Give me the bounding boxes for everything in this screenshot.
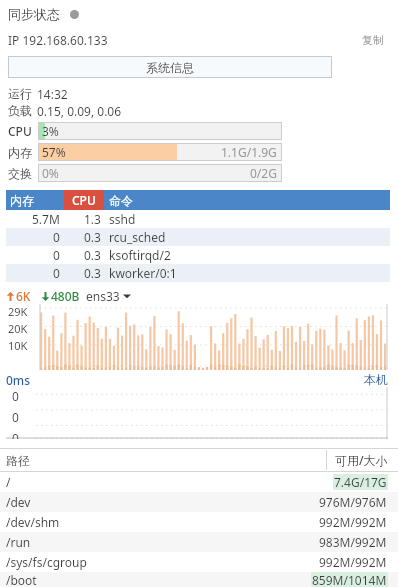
staticText: 0.15, 0.09, 0.06 [37, 103, 122, 119]
button[interactable]: 0 [6, 246, 390, 264]
staticText: 0 [12, 388, 19, 404]
staticText: 运行 [8, 86, 32, 101]
staticText: 976M/976M [319, 494, 387, 510]
staticText: ksoftirqd/2 [109, 247, 171, 263]
button[interactable]: 内存 [8, 143, 282, 161]
staticText: 0 [53, 247, 60, 263]
button[interactable]: 5.7M [6, 210, 390, 228]
button[interactable]: /dev/shm [0, 512, 398, 532]
staticText: 复制 [362, 33, 384, 47]
staticText: 983M/992M [319, 534, 387, 550]
staticText: 0ms [6, 372, 31, 387]
staticText: IP 192.168.60.133 [8, 32, 108, 48]
staticText: kworker/0:1 [109, 265, 177, 281]
button[interactable]: /dev [0, 492, 398, 512]
staticText: 本机 [364, 372, 388, 387]
staticText: /run [6, 534, 31, 550]
staticText: rcu_sched [109, 229, 166, 245]
staticText: 交换 [8, 166, 32, 181]
staticText: 路径 [6, 453, 30, 468]
staticText: 同步状态 [8, 6, 60, 22]
button[interactable]: CPU [8, 122, 282, 140]
other: Upload [6, 292, 15, 301]
staticText: 命令 [109, 193, 133, 208]
staticText: 7.4G/17G [334, 474, 387, 490]
staticText: 992M/992M [319, 514, 387, 530]
staticText: CPU [72, 192, 96, 208]
button[interactable]: /sys/fs/cgroup [0, 552, 398, 572]
staticText: 20K [8, 321, 28, 336]
staticText: 内存 [10, 193, 34, 208]
staticText: / [6, 474, 11, 490]
staticText: 0/2G [250, 165, 277, 181]
staticText: 1.3 [84, 211, 101, 227]
staticText: 系统信息 [146, 60, 194, 75]
staticText: 29K [8, 304, 28, 319]
staticText: 1.1G/1.9G [221, 144, 277, 160]
staticText: 0.3 [84, 247, 101, 263]
staticText: 可用/大小 [335, 452, 388, 468]
staticText: ens33 [86, 288, 120, 304]
button[interactable]: 交换 [8, 164, 282, 182]
staticText: 480B [51, 288, 80, 304]
button[interactable]: 0 [6, 228, 390, 246]
staticText: 10K [8, 338, 28, 353]
staticText: 0% [42, 165, 59, 181]
staticText: 0 [53, 265, 60, 281]
staticText: 0 [12, 409, 19, 425]
staticText: 5.7M [32, 211, 60, 227]
staticText: 14:32 [37, 86, 68, 102]
button[interactable]: /run [0, 532, 398, 552]
staticText: 992M/992M [319, 554, 387, 570]
staticText: 57% [42, 144, 66, 160]
other: Download [41, 292, 50, 301]
button[interactable]: 复制 [358, 31, 388, 49]
staticText: 负载 [8, 103, 32, 118]
staticText: sshd [109, 211, 136, 227]
staticText: 0 [12, 430, 19, 439]
staticText: /dev [6, 494, 31, 510]
staticText: 3% [42, 123, 59, 139]
button[interactable]: /boot [0, 572, 398, 587]
staticText: /sys/fs/cgroup [6, 554, 87, 570]
staticText: 6K [16, 288, 31, 304]
staticText: 内存 [8, 145, 32, 160]
button[interactable]: 系统信息 [8, 56, 332, 78]
staticText: /dev/shm [6, 514, 60, 530]
button[interactable]: 0 [6, 264, 390, 282]
staticText: 0.3 [84, 229, 101, 245]
staticText: 859M/1014M [312, 572, 387, 587]
button[interactable]: / [0, 472, 398, 492]
staticText: CPU [8, 123, 32, 139]
staticText: 0.3 [84, 265, 101, 281]
button[interactable]: ens33 [86, 288, 131, 304]
staticText: /boot [6, 572, 37, 587]
staticText: 0 [53, 229, 60, 245]
